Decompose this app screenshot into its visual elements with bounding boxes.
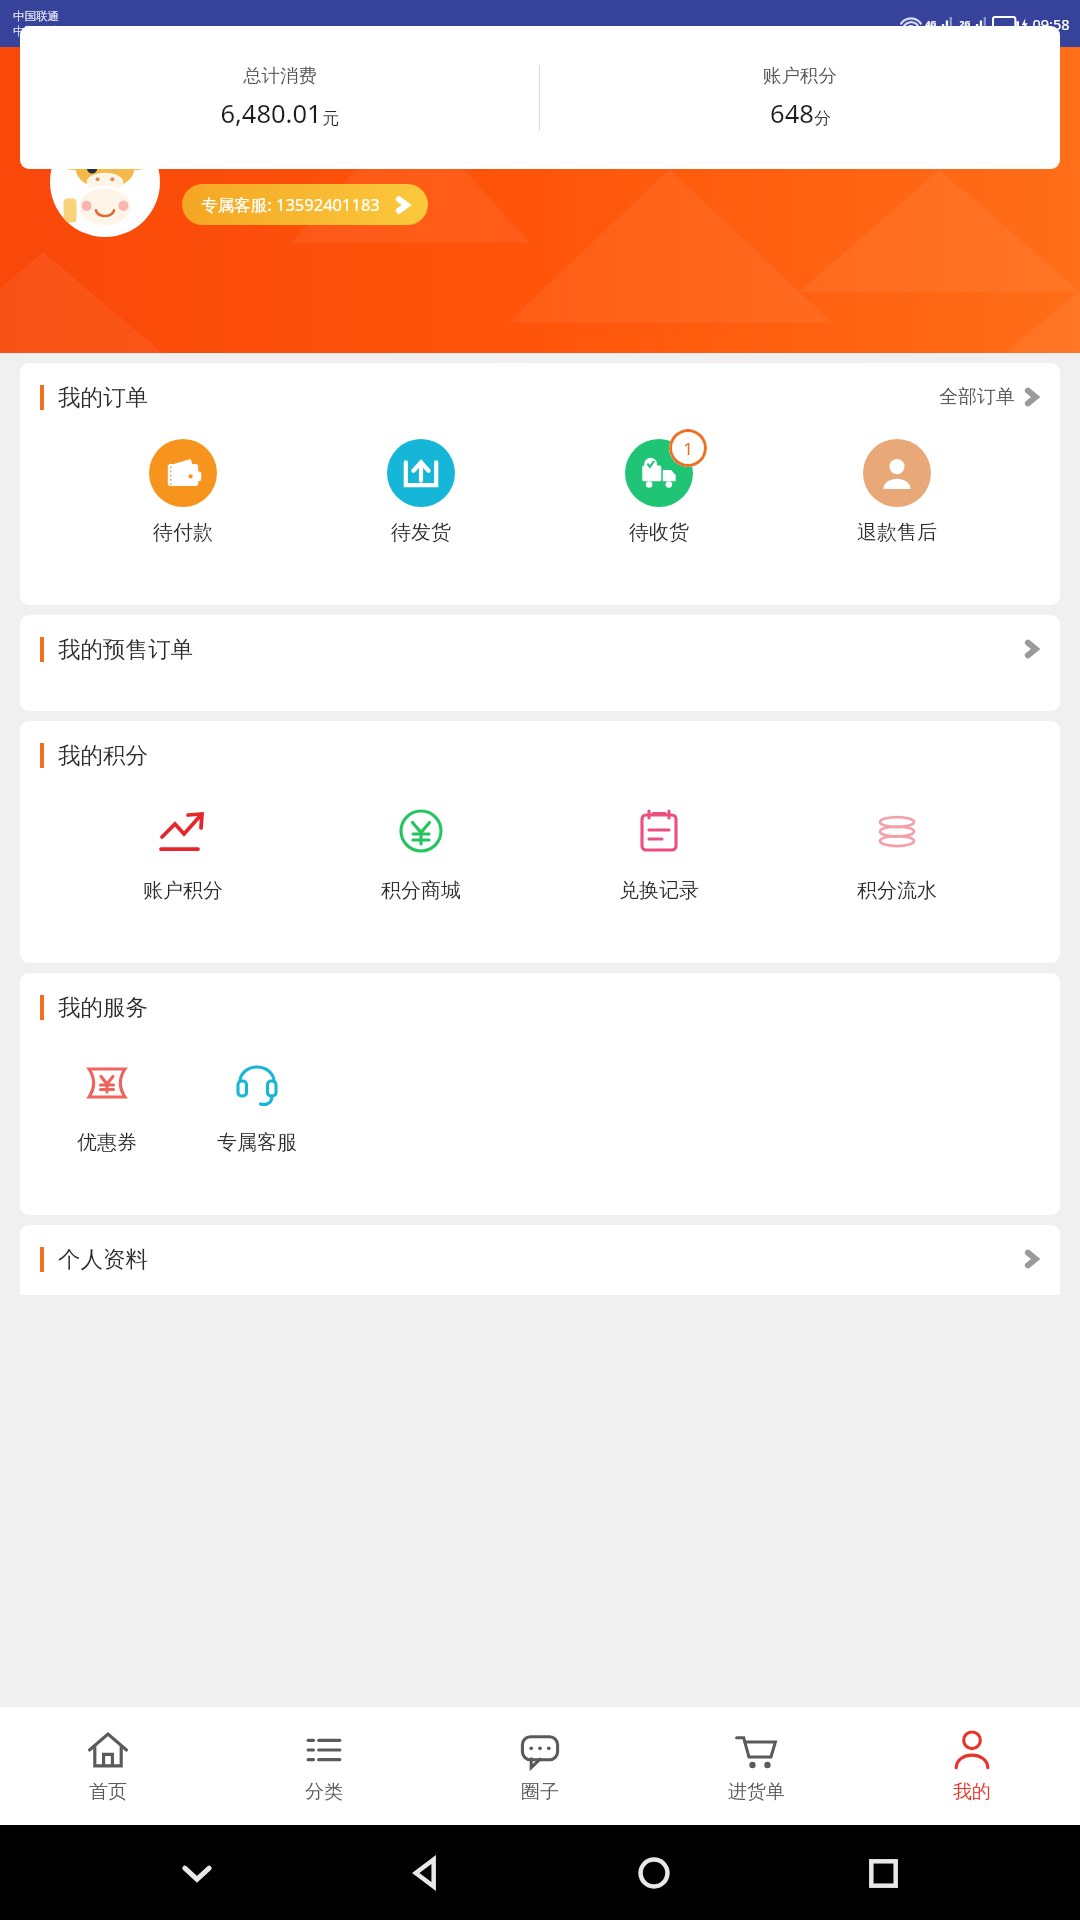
staticText: 账户积分 (763, 64, 837, 87)
staticText: 专属客服 (217, 1130, 297, 1155)
button[interactable]: Avatar (50, 127, 160, 237)
button[interactable]: 积分商城 (346, 797, 496, 903)
button[interactable]: Home (623, 1842, 685, 1904)
staticText: 我的订单 (58, 383, 148, 411)
staticText: 1 (683, 437, 693, 460)
staticText: 我的 (953, 1780, 991, 1804)
staticText: 专属客服: 13592401183 (201, 193, 380, 216)
staticText: 中国移动 (13, 24, 59, 38)
button[interactable]: 总计消费 (20, 64, 539, 131)
button[interactable]: 我的订单 (20, 363, 1060, 431)
staticText: asdfasdf11 (182, 140, 306, 173)
button[interactable]: Recent apps (852, 1842, 914, 1904)
button[interactable]: 我的 (864, 1707, 1080, 1825)
staticText: 账户积分 (143, 878, 223, 903)
staticText: 待发货 (391, 520, 451, 545)
staticText: 2G (959, 18, 971, 30)
staticText: 3234234 (486, 79, 595, 116)
staticText: 积分商城 (381, 878, 461, 903)
staticText: 优惠券 (77, 1130, 137, 1155)
staticText: 09:58 (1032, 14, 1070, 34)
button[interactable]: 1 (584, 439, 734, 545)
button[interactable]: 专属客服: 13592401183 (182, 184, 428, 225)
button[interactable]: 个人资料 (20, 1225, 1060, 1293)
staticText: 积分流水 (857, 878, 937, 903)
staticText: 我的预售订单 (58, 635, 193, 663)
button[interactable]: 我的预售订单 (20, 615, 1060, 683)
staticText: 4G (925, 18, 937, 30)
staticText: 我的服务 (58, 993, 148, 1021)
staticText: 元 (322, 108, 339, 129)
button[interactable]: 圈子 (432, 1707, 648, 1825)
staticText: 首页 (89, 1780, 127, 1804)
staticText: 圈子 (521, 1780, 559, 1804)
staticText: 退款售后 (857, 520, 937, 545)
button[interactable]: 积分流水 (822, 797, 972, 903)
button[interactable]: 优惠券 (32, 1049, 182, 1155)
button[interactable]: 分类 (216, 1707, 432, 1825)
staticText: 分类 (305, 1780, 343, 1804)
staticText: 6,480.01 (220, 96, 322, 131)
staticText: 我的积分 (58, 741, 148, 769)
button[interactable]: Back (395, 1842, 457, 1904)
staticText: 全部订单 (939, 385, 1015, 409)
staticText: 进货单 (728, 1780, 785, 1804)
staticText: 待付款 (153, 520, 213, 545)
staticText: 兑换记录 (619, 878, 699, 903)
staticText: 中国联通 (13, 9, 59, 23)
staticText: 分 (814, 108, 831, 129)
staticText: 个人资料 (58, 1245, 148, 1273)
button[interactable]: 专属客服 (182, 1049, 332, 1155)
button[interactable]: 待发货 (346, 439, 496, 545)
button[interactable]: 兑换记录 (584, 797, 734, 903)
staticText: 待收货 (629, 520, 689, 545)
button[interactable]: 待付款 (108, 439, 258, 545)
button[interactable]: 退款售后 (822, 439, 972, 545)
button[interactable]: Hide keyboard (166, 1842, 228, 1904)
button[interactable]: 账户积分 (108, 797, 258, 903)
button[interactable]: 首页 (0, 1707, 216, 1825)
button[interactable]: 账户积分 (540, 64, 1060, 131)
staticText: 648 (770, 96, 814, 131)
button[interactable]: 进货单 (648, 1707, 864, 1825)
staticText: 总计消费 (243, 64, 317, 87)
